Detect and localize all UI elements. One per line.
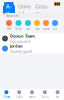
staticText: Search <box>6 13 18 18</box>
staticText: Calls <box>16 95 22 99</box>
staticText: Sounds good! <box>10 48 32 54</box>
staticText: Groups <box>35 3 49 17</box>
staticText: See you at 4 <box>10 38 30 44</box>
staticText: Me <box>56 95 60 99</box>
button[interactable]: Design Team <box>0 33 64 43</box>
staticText: Chats <box>3 95 10 99</box>
staticText: ▮▮▮ <box>54 1 60 6</box>
staticText: Tools <box>41 95 48 99</box>
button[interactable]: Tools <box>38 90 51 99</box>
staticText: Leo <box>52 27 57 30</box>
button[interactable]: Calls <box>13 90 26 99</box>
button[interactable]: Me <box>51 90 64 99</box>
button[interactable]: Chats <box>0 90 13 99</box>
staticText: All <box>6 3 12 17</box>
staticText: 9:41 <box>4 0 14 7</box>
staticText: Mia <box>7 27 11 30</box>
button[interactable]: Status <box>26 90 38 99</box>
staticText: Design Team <box>10 33 35 38</box>
staticText: Emma <box>43 27 49 30</box>
staticText: Ava <box>26 27 30 30</box>
staticText: Unread <box>18 3 32 17</box>
button[interactable]: Jordan <box>0 43 64 53</box>
staticText: Liam <box>34 27 39 30</box>
staticText: Status <box>28 95 35 99</box>
staticText: Noah <box>15 27 22 30</box>
staticText: Jordan <box>10 43 23 48</box>
